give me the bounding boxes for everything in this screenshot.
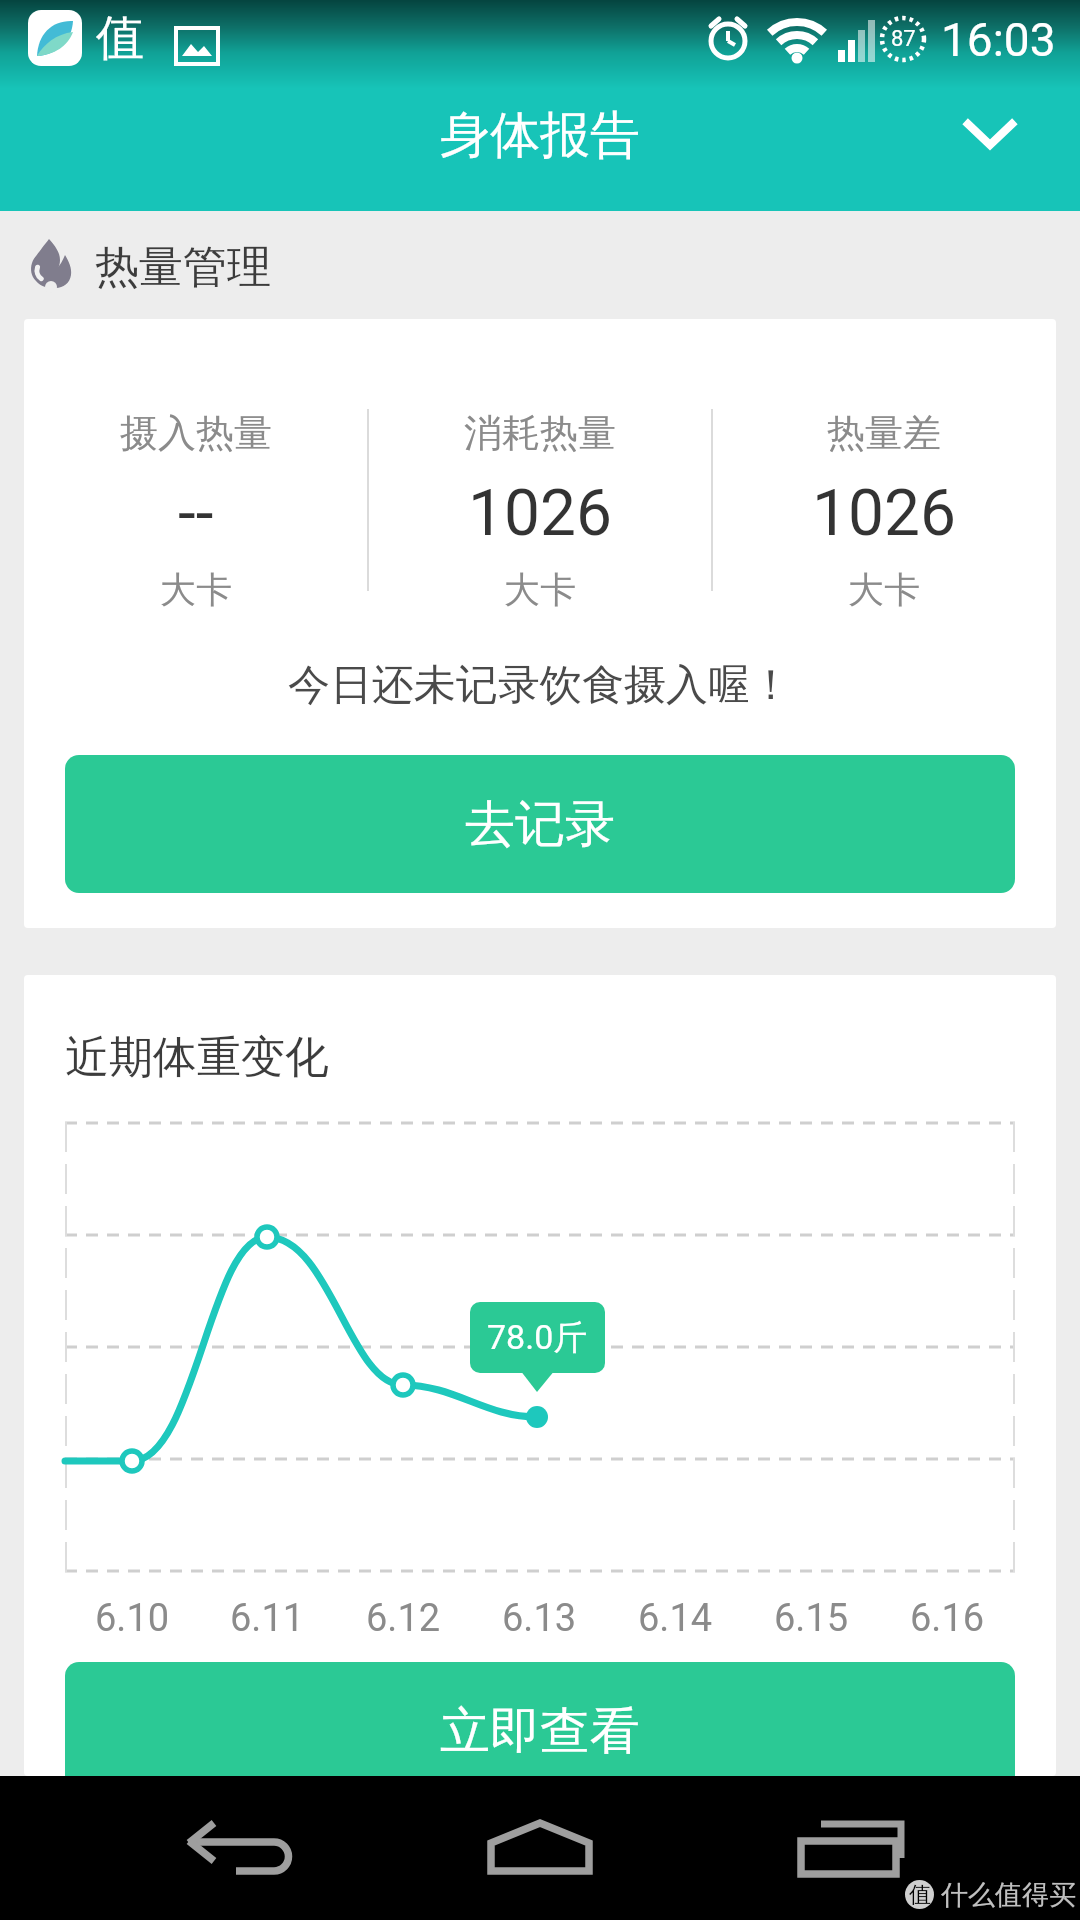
staticText: 6.15 (774, 1596, 849, 1641)
staticText: 6.11 (230, 1596, 305, 1641)
staticText: 今日还未记录饮食摄入喔！ (288, 659, 792, 712)
staticText: 去记录 (465, 793, 615, 856)
button[interactable] (465, 1776, 615, 1920)
staticText: 大卡 (848, 567, 920, 611)
staticText: 6.12 (366, 1596, 441, 1641)
button[interactable]: 去记录 (65, 755, 1015, 893)
staticText: 6.14 (638, 1596, 713, 1641)
staticText: 6.10 (95, 1596, 170, 1641)
staticText: 身体报告 (440, 104, 640, 167)
button[interactable] (790, 1776, 910, 1920)
staticText: 1026 (468, 476, 612, 551)
staticText: 近期体重变化 (65, 1030, 329, 1085)
staticText: 6.16 (910, 1596, 985, 1641)
staticText: 87 (891, 26, 916, 52)
staticText: 热量管理 (95, 240, 271, 295)
staticText: 值 (909, 1881, 931, 1909)
staticText: -- (178, 476, 214, 551)
staticText: 摄入热量 (120, 409, 272, 457)
staticText: 值 (96, 8, 144, 68)
staticText: 1026 (812, 476, 956, 551)
staticText: 消耗热量 (464, 409, 616, 457)
button[interactable]: 立即查看 (65, 1662, 1015, 1776)
staticText: 大卡 (160, 567, 232, 611)
staticText: 6.13 (502, 1596, 577, 1641)
staticText: 78.0斤 (487, 1316, 588, 1359)
staticText: 大卡 (504, 567, 576, 611)
staticText: 什么值得买 (941, 1878, 1076, 1910)
staticText: 热量差 (827, 409, 941, 457)
button[interactable] (160, 1776, 320, 1920)
staticText: 立即查看 (440, 1700, 640, 1763)
staticText: 16:03 (941, 13, 1056, 67)
button[interactable] (945, 100, 1035, 170)
